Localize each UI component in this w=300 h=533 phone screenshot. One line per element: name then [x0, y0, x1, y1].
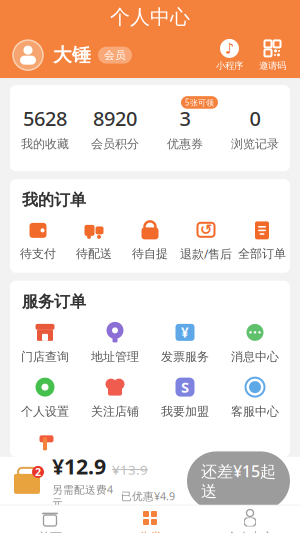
staticText: 我的收藏 [21, 137, 69, 151]
button[interactable]: 关注店铺 [80, 376, 150, 419]
staticText: ¥13.9 [112, 461, 148, 478]
staticText: 0 [249, 105, 260, 132]
button[interactable]: 分类 [100, 509, 200, 533]
staticText: 我要加盟 [161, 404, 209, 419]
staticText: 待支付 [20, 246, 56, 261]
staticText: ♪ [225, 40, 234, 57]
staticText: ¥ [181, 323, 189, 341]
staticText: 个人中心 [226, 530, 274, 533]
staticText: 关注店铺 [91, 404, 139, 419]
button[interactable]: 客服中心 [220, 376, 290, 419]
staticText: 会员积分 [91, 137, 139, 151]
staticText: 发票服务 [161, 349, 209, 364]
button[interactable]: 邀请码 [243, 39, 286, 71]
button[interactable]: 还差¥15起送 [187, 451, 290, 510]
staticText: 待自提 [132, 246, 168, 261]
staticText: 浏览记录 [231, 137, 279, 151]
staticText: 5628 [23, 105, 67, 132]
staticText: 分类 [138, 530, 162, 533]
button[interactable]: 个人设置 [10, 376, 80, 419]
button[interactable]: 3 [150, 96, 220, 160]
staticText: 我的订单 [22, 190, 86, 210]
button[interactable]: 8920 [80, 105, 150, 151]
button[interactable]: 个人中心 [200, 509, 300, 533]
button[interactable]: 地址管理 [80, 321, 150, 364]
button[interactable]: ↺ [178, 220, 234, 262]
button[interactable]: 待自提 [122, 220, 178, 261]
staticText: 客服中心 [231, 404, 279, 419]
staticText: 小程序 [216, 60, 243, 71]
staticText: 消息中心 [231, 349, 279, 364]
staticText: S [181, 377, 189, 397]
staticText: 邀请码 [259, 60, 286, 71]
staticText: 全部订单 [238, 246, 286, 261]
staticText: 个人中心 [110, 5, 190, 29]
staticText: 优惠券 [167, 137, 203, 151]
staticText: 待配送 [76, 246, 112, 261]
staticText: 还差¥15起送 [201, 460, 276, 501]
staticText: 首页 [38, 530, 62, 533]
staticText: 2 [35, 465, 41, 479]
button[interactable]: S [150, 376, 220, 419]
button[interactable]: 待配送 [66, 220, 122, 261]
staticText: 地址管理 [91, 349, 139, 364]
staticText: 个人设置 [21, 404, 69, 419]
staticText: 会员 [104, 49, 126, 62]
button[interactable]: 全部订单 [234, 220, 290, 261]
button[interactable]: 消息中心 [220, 321, 290, 364]
staticText: 另需配送费4元 [52, 482, 113, 510]
staticText: 退款/售后 [180, 246, 232, 262]
staticText: 已优惠¥4.9 [121, 489, 175, 503]
button[interactable]: ¥ [150, 321, 220, 364]
button[interactable]: 门店查询 [10, 321, 80, 364]
button[interactable]: 待支付 [10, 220, 66, 261]
button[interactable]: 0 [220, 105, 290, 151]
button[interactable]: 5628 [10, 105, 80, 151]
button[interactable]: ♪ [216, 39, 243, 71]
staticText: ↺ [200, 221, 212, 238]
staticText: 8920 [93, 105, 137, 132]
staticText: 门店查询 [21, 349, 69, 364]
staticText: ¥12.9 [52, 452, 106, 480]
button[interactable]: 首页 [0, 509, 100, 533]
staticText: 5张可领 [185, 97, 214, 108]
staticText: 3 [179, 105, 190, 132]
staticText: 大锤 [53, 44, 91, 67]
staticText: 服务订单 [22, 292, 86, 311]
